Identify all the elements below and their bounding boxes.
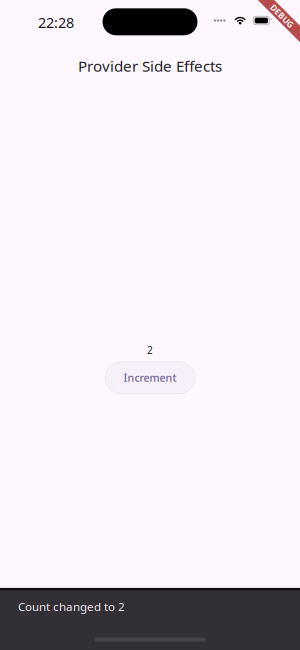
staticText: Provider Side Effects xyxy=(78,56,222,76)
staticText: Increment xyxy=(123,371,176,385)
button[interactable]: Increment xyxy=(105,362,195,394)
staticText: 2 xyxy=(147,343,153,357)
staticText: DEBUG xyxy=(267,10,296,22)
staticText: Count changed to 2 xyxy=(18,599,125,614)
staticText: 22:28 xyxy=(38,13,74,32)
button[interactable]: Count changed to 2 xyxy=(0,588,300,650)
